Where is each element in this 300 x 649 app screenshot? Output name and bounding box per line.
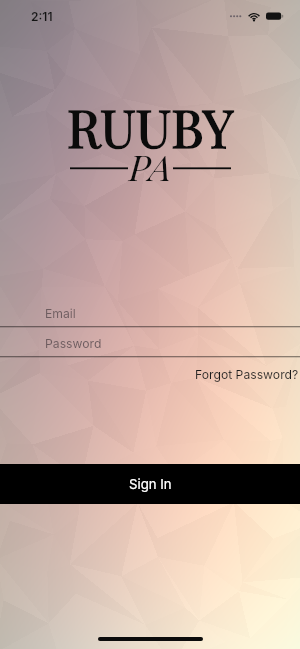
button[interactable]: Forgot Password? (185, 363, 300, 387)
button[interactable]: Password (0, 331, 300, 358)
staticText: Email (45, 306, 76, 321)
button[interactable]: Email (0, 301, 300, 328)
staticText: 2:11 (31, 9, 53, 24)
staticText: Forgot Password? (195, 367, 299, 382)
staticText: Sign In (129, 476, 172, 492)
staticText: Password (45, 336, 102, 351)
button[interactable]: Sign In (0, 464, 300, 504)
staticText: RUUBY (67, 92, 234, 161)
staticText: PA (129, 142, 172, 190)
